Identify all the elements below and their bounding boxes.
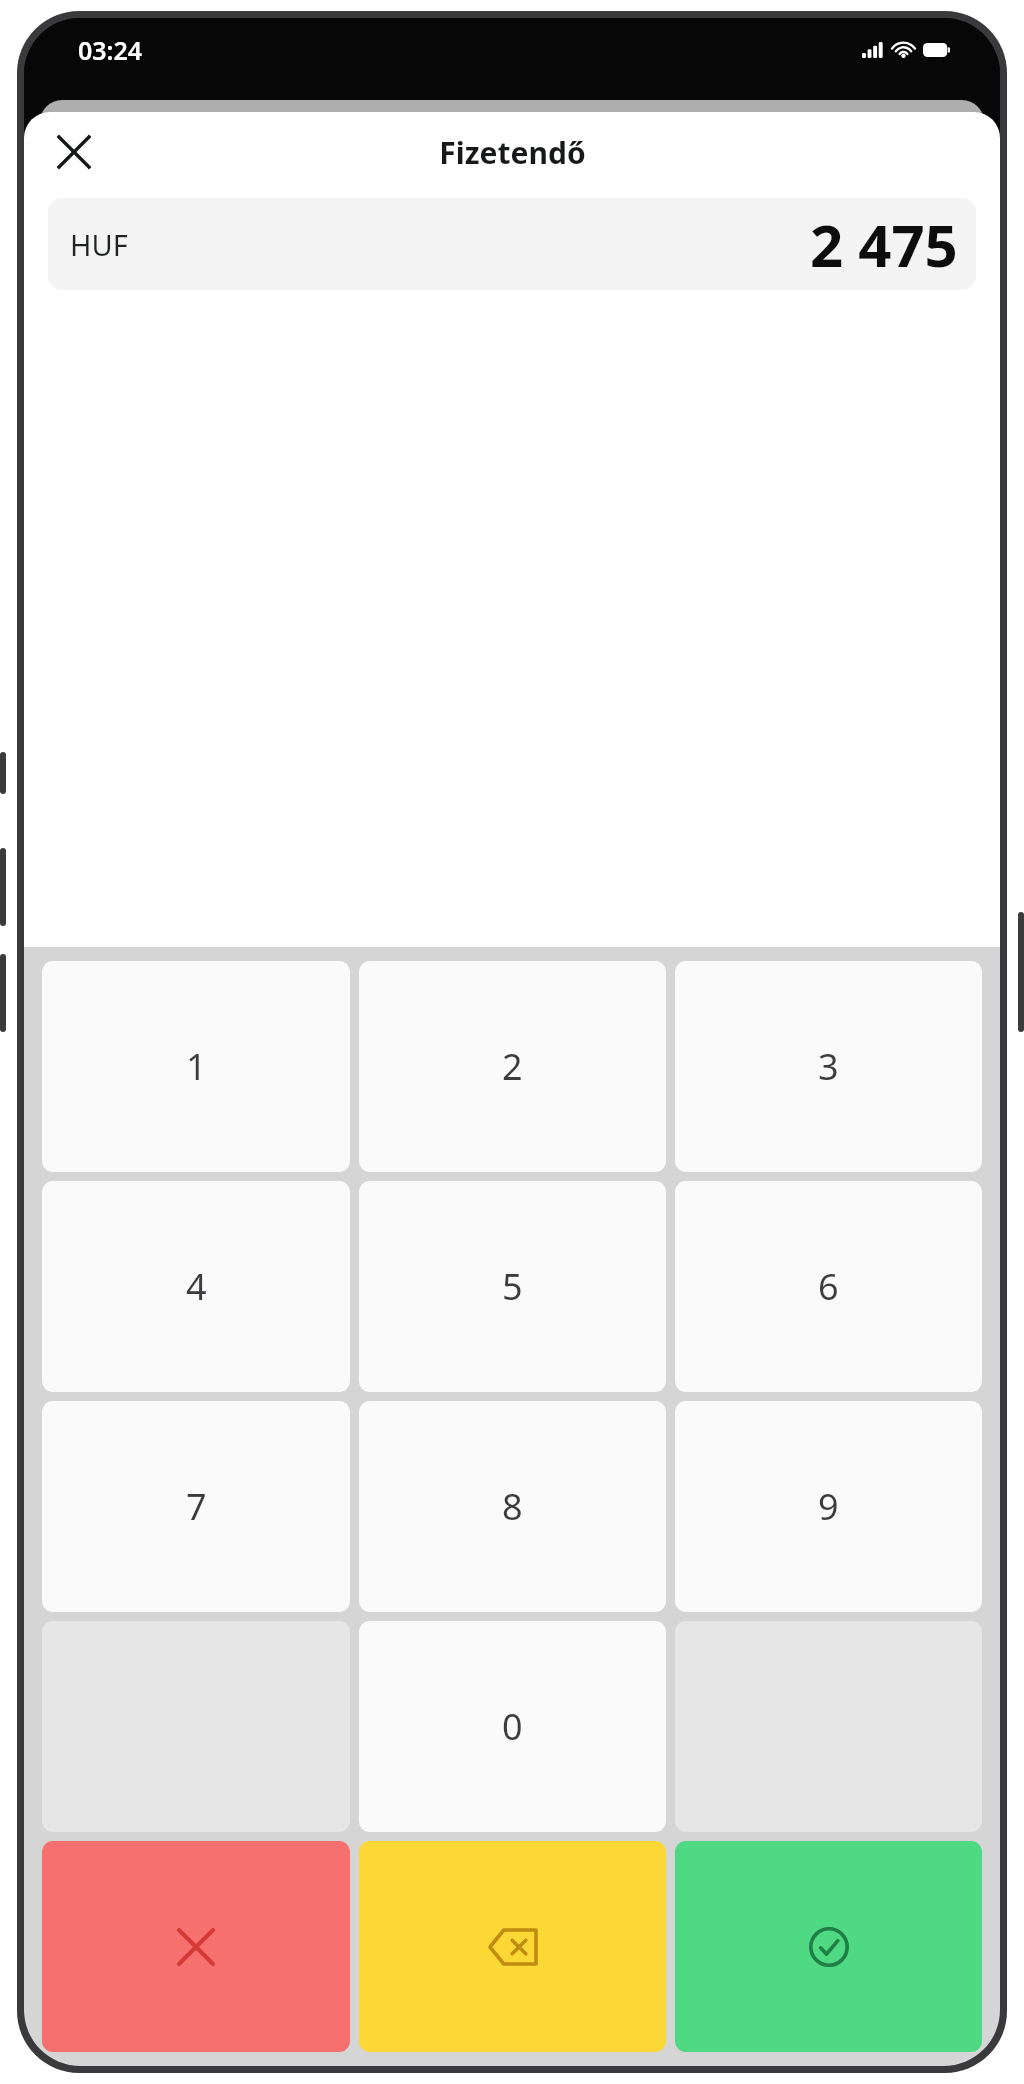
button[interactable]: 2 [359,961,666,1172]
staticText: 6 [818,1262,839,1311]
staticText: 3 [818,1042,839,1091]
staticText: 9 [818,1482,839,1531]
staticText: 2 475 [810,205,958,284]
staticText: 7 [186,1482,207,1531]
button[interactable]: Confirm [675,1841,982,2052]
button[interactable]: 5 [359,1181,666,1392]
staticText: Fizetendő [439,132,586,173]
button[interactable]: 4 [42,1181,350,1392]
button[interactable]: 6 [675,1181,982,1392]
staticText: 1 [186,1042,207,1091]
staticText: 0 [502,1702,523,1751]
staticText: HUF [70,225,128,264]
button[interactable]: 8 [359,1401,666,1612]
staticText: 2 [502,1042,523,1091]
button[interactable]: Backspace [359,1841,666,2052]
staticText: 4 [186,1262,207,1311]
staticText: 5 [502,1262,523,1311]
staticText: 03:24 [78,33,143,67]
button[interactable]: 7 [42,1401,350,1612]
button[interactable]: Cancel [42,1841,350,2052]
button[interactable]: 9 [675,1401,982,1612]
button[interactable]: 3 [675,961,982,1172]
button[interactable]: 1 [42,961,350,1172]
button[interactable]: 0 [359,1621,666,1832]
button[interactable]: HUF [48,198,976,290]
button[interactable]: Close [46,124,102,180]
staticText: 8 [502,1482,523,1531]
